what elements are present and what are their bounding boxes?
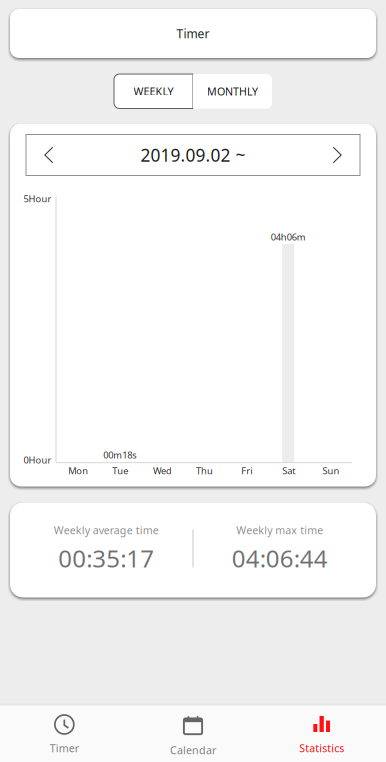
staticText: 0Hour: [24, 454, 52, 466]
button[interactable]: Calendar: [129, 706, 257, 762]
staticText: 2019.09.02 ~: [140, 143, 245, 166]
button[interactable]: Next week: [314, 134, 360, 175]
staticText: WEEKLY: [133, 84, 173, 98]
button[interactable]: Previous week: [26, 134, 72, 175]
button[interactable]: Timer: [0, 706, 129, 762]
staticText: Sat: [282, 464, 295, 477]
button[interactable]: MONTHLY: [193, 74, 272, 108]
staticText: Thu: [196, 464, 213, 477]
staticText: 00:35:17: [58, 542, 154, 574]
staticText: Weekly average time: [54, 523, 159, 537]
staticText: Calendar: [170, 743, 216, 757]
staticText: 04:06:44: [232, 542, 328, 574]
staticText: Mon: [68, 464, 88, 477]
staticText: Timer: [176, 25, 209, 41]
staticText: 5Hour: [24, 192, 52, 205]
button[interactable]: WEEKLY: [114, 74, 193, 108]
staticText: Tue: [112, 464, 128, 477]
staticText: Sun: [322, 464, 339, 477]
staticText: MONTHLY: [207, 84, 258, 98]
button[interactable]: Statistics: [257, 706, 386, 762]
staticText: Timer: [50, 741, 79, 755]
staticText: Fri: [241, 464, 252, 477]
staticText: Weekly max time: [236, 523, 323, 537]
staticText: Wed: [153, 464, 172, 477]
staticText: 00m18s: [103, 449, 136, 461]
button[interactable]: Timer: [10, 9, 376, 58]
staticText: 04h06m: [271, 231, 306, 243]
staticText: Statistics: [299, 741, 344, 755]
